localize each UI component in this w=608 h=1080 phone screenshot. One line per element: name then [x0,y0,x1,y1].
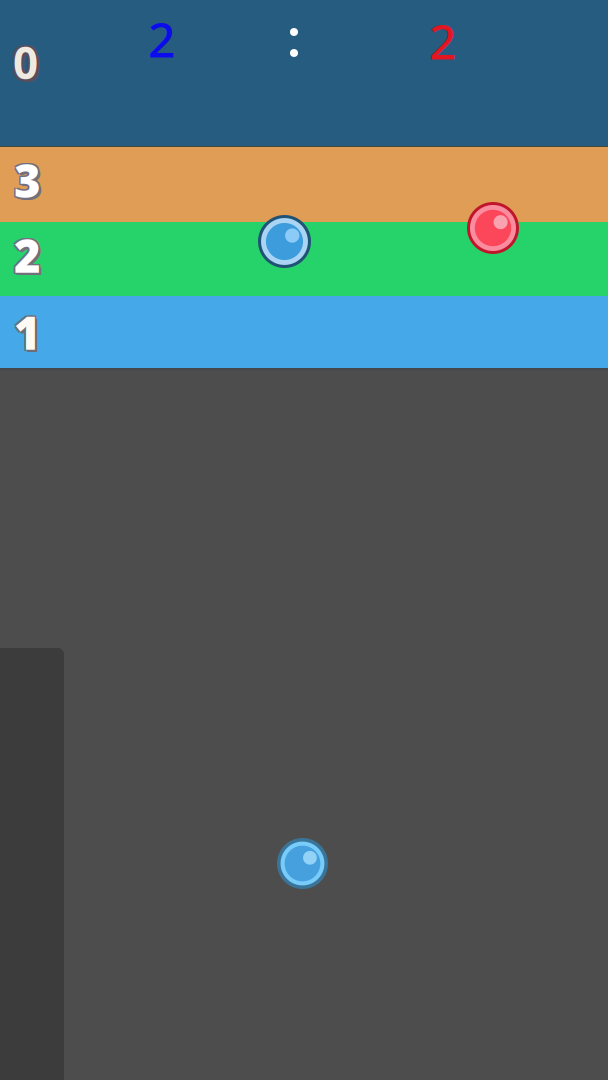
staticText: 0 [16,36,41,94]
staticText: 3 [16,152,43,213]
staticText: 2 [15,227,42,288]
staticText: 2 [13,224,40,284]
staticText: 2 [15,224,42,284]
staticText: 1 [14,302,41,362]
staticText: 0 [13,33,38,91]
staticText: 1 [15,301,42,361]
staticText: 3 [13,151,40,212]
staticText: 0 [14,36,39,94]
staticText: 2 [16,227,43,288]
staticText: 0 [11,31,36,90]
staticText: 2 [13,226,40,287]
staticText: 1 [15,304,42,365]
staticText: 1 [16,304,43,365]
button[interactable]: Play area [0,0,608,1080]
staticText: 3 [14,150,41,210]
staticText: 1 [13,301,40,361]
staticText: 0 [15,31,40,90]
staticText: 0 [11,35,36,93]
staticText: 3 [13,149,40,209]
staticText: 2 [429,9,456,73]
staticText: 2 [148,7,175,71]
staticText: 3 [15,149,42,209]
staticText: 3 [15,152,42,213]
staticText: 2 [14,225,41,285]
staticText: 1 [13,303,40,364]
